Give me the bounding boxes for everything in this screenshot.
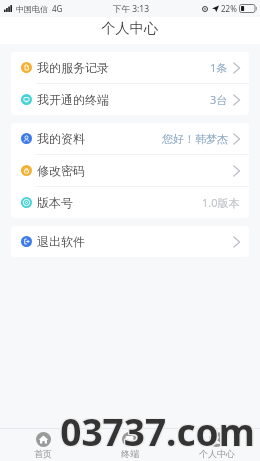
staticText: 下午 3:13 xyxy=(113,3,150,15)
staticText: 03737.com xyxy=(60,406,255,456)
staticText: 1.0版本 xyxy=(202,195,240,210)
staticText: 个人中心 xyxy=(101,19,159,37)
button[interactable]: 终端 xyxy=(86,432,173,459)
staticText: 首页 xyxy=(34,448,52,459)
button[interactable]: 我的服务记录 xyxy=(11,52,249,83)
staticText: 我的资料 xyxy=(37,131,85,146)
button[interactable]: 我开通的终端 xyxy=(11,84,249,115)
staticText: 03737.com xyxy=(61,406,256,456)
staticText: 版本号 xyxy=(37,195,73,210)
staticText: 终端 xyxy=(121,448,139,459)
staticText: 03737.com xyxy=(60,407,255,457)
button[interactable]: 退出软件 xyxy=(11,226,249,257)
button[interactable]: 版本号 xyxy=(11,187,249,218)
staticText: 03737.com xyxy=(59,406,254,456)
staticText: 我的服务记录 xyxy=(37,60,109,75)
button[interactable]: 首页 xyxy=(0,432,86,459)
staticText: 1条 xyxy=(210,60,228,75)
staticText: 22% xyxy=(221,3,237,14)
staticText: 03737.com xyxy=(61,405,256,455)
staticText: 中国电信 xyxy=(16,4,48,14)
button[interactable]: 我的资料 xyxy=(11,123,249,154)
staticText: 4G xyxy=(52,3,63,14)
staticText: 03737.com xyxy=(60,405,255,455)
staticText: 您好！韩梦杰 xyxy=(162,132,228,146)
staticText: 03737.com xyxy=(59,407,254,457)
staticText: 修改密码 xyxy=(37,163,85,178)
staticText: 个人中心 xyxy=(199,448,235,459)
staticText: 退出软件 xyxy=(37,234,85,249)
staticText: 我开通的终端 xyxy=(37,92,109,107)
staticText: 03737.com xyxy=(59,405,254,455)
staticText: 03737.com xyxy=(61,407,256,457)
button[interactable]: 个人中心 xyxy=(173,432,260,459)
staticText: 3台 xyxy=(210,92,228,107)
button[interactable]: 修改密码 xyxy=(11,155,249,186)
